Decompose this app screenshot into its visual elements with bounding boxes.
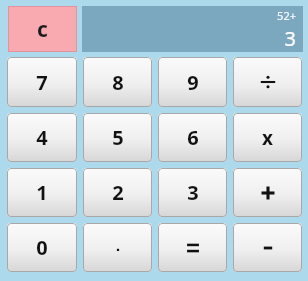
staticText: 2 <box>112 179 124 206</box>
button[interactable]: 7 <box>7 57 77 107</box>
button[interactable]: 4 <box>7 113 77 162</box>
staticText: 6 <box>187 124 199 151</box>
staticText: 8 <box>112 69 124 96</box>
button[interactable]: Minus <box>233 223 302 272</box>
button[interactable]: Equals <box>158 223 227 272</box>
button[interactable]: 1 <box>7 168 77 217</box>
button[interactable]: 9 <box>158 57 227 107</box>
staticText: x <box>262 125 273 151</box>
button[interactable]: Plus <box>233 168 302 217</box>
button[interactable]: 0 <box>7 223 77 272</box>
button[interactable]: c <box>8 6 77 52</box>
button[interactable]: x <box>233 113 302 162</box>
button[interactable]: 2 <box>83 168 152 217</box>
staticText: 3 <box>284 25 296 49</box>
button[interactable]: 8 <box>83 57 152 107</box>
staticText: c <box>37 15 48 44</box>
staticText: 5 <box>112 124 124 151</box>
staticText: 4 <box>36 124 48 151</box>
staticText: 7 <box>36 69 48 96</box>
staticText: 9 <box>187 69 199 96</box>
button[interactable]: Decimal point <box>83 223 152 272</box>
staticText: 52+ <box>277 8 296 23</box>
button[interactable]: 3 <box>158 168 227 217</box>
button[interactable]: 5 <box>83 113 152 162</box>
staticText: 0 <box>36 234 48 261</box>
staticText: 1 <box>36 179 48 206</box>
button[interactable]: 6 <box>158 113 227 162</box>
button[interactable]: Divide <box>233 57 302 107</box>
staticText: 3 <box>187 179 199 206</box>
